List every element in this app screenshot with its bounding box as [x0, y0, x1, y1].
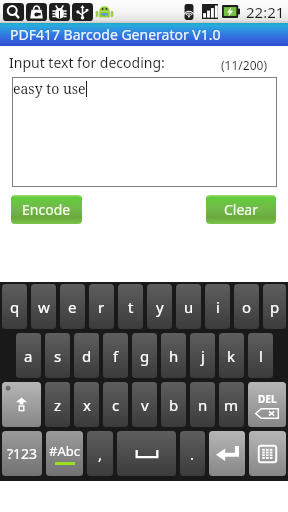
button[interactable]: t: [118, 284, 143, 329]
staticText: a: [24, 346, 33, 366]
button[interactable]: x: [74, 382, 99, 427]
staticText: u: [184, 297, 194, 317]
staticText: g: [140, 346, 150, 366]
button[interactable]: h: [161, 333, 186, 378]
staticText: 22:21: [246, 2, 285, 22]
button[interactable]: Space: [117, 431, 176, 476]
staticText: e: [68, 297, 77, 317]
staticText: j: [201, 346, 205, 366]
staticText: i: [216, 297, 220, 317]
button[interactable]: s: [45, 333, 70, 378]
staticText: Encode: [22, 200, 71, 219]
staticText: #Abc: [49, 442, 80, 460]
button[interactable]: Enter: [209, 431, 245, 476]
staticText: y: [156, 297, 164, 317]
staticText: .: [190, 444, 195, 464]
staticText: f: [113, 346, 119, 366]
button[interactable]: l: [248, 333, 273, 378]
button[interactable]: j: [190, 333, 215, 378]
button[interactable]: p: [263, 284, 286, 329]
button[interactable]: i: [205, 284, 230, 329]
staticText: (11/200): [221, 57, 267, 73]
button[interactable]: e: [60, 284, 85, 329]
button[interactable]: ?123: [2, 431, 42, 476]
button[interactable]: v: [132, 382, 157, 427]
button[interactable]: Shift: [2, 382, 41, 427]
button[interactable]: d: [74, 333, 99, 378]
button[interactable]: f: [103, 333, 128, 378]
staticText: p: [270, 297, 280, 317]
button[interactable]: w: [31, 284, 56, 329]
staticText: r: [98, 297, 105, 317]
staticText: h: [169, 346, 179, 366]
staticText: n: [198, 395, 208, 415]
button[interactable]: Delete: [248, 382, 286, 427]
button[interactable]: Keyboard: [249, 431, 286, 476]
staticText: v: [141, 395, 149, 415]
staticText: d: [82, 346, 92, 366]
button[interactable]: z: [45, 382, 70, 427]
staticText: easy to use: [13, 79, 86, 98]
button[interactable]: u: [176, 284, 201, 329]
staticText: m: [224, 395, 239, 415]
staticText: b: [169, 395, 179, 415]
staticText: PDF417 Barcode Generator V1.0: [10, 25, 221, 44]
staticText: o: [242, 297, 252, 317]
button[interactable]: Switch language: [46, 431, 83, 476]
button[interactable]: y: [147, 284, 172, 329]
staticText: l: [259, 346, 263, 366]
staticText: c: [112, 395, 120, 415]
staticText: ,: [98, 444, 103, 464]
staticText: ?123: [7, 444, 38, 463]
button[interactable]: g: [132, 333, 157, 378]
button[interactable]: n: [190, 382, 215, 427]
staticText: q: [10, 297, 20, 317]
staticText: Clear: [224, 200, 258, 219]
button[interactable]: k: [219, 333, 244, 378]
button[interactable]: ,: [87, 431, 113, 476]
button[interactable]: q: [2, 284, 27, 329]
staticText: z: [54, 395, 62, 415]
staticText: w: [38, 297, 50, 317]
button[interactable]: r: [89, 284, 114, 329]
button[interactable]: m: [219, 382, 244, 427]
button[interactable]: Encode: [11, 195, 82, 224]
staticText: t: [128, 297, 134, 317]
button[interactable]: o: [234, 284, 259, 329]
button[interactable]: b: [161, 382, 186, 427]
button[interactable]: a: [16, 333, 41, 378]
button[interactable]: Clear: [206, 195, 276, 224]
staticText: Input text for decoding:: [9, 53, 165, 72]
staticText: s: [54, 346, 62, 366]
staticText: x: [83, 395, 91, 415]
staticText: DEL: [258, 392, 277, 406]
button[interactable]: c: [103, 382, 128, 427]
staticText: k: [227, 346, 236, 366]
button[interactable]: .: [180, 431, 205, 476]
